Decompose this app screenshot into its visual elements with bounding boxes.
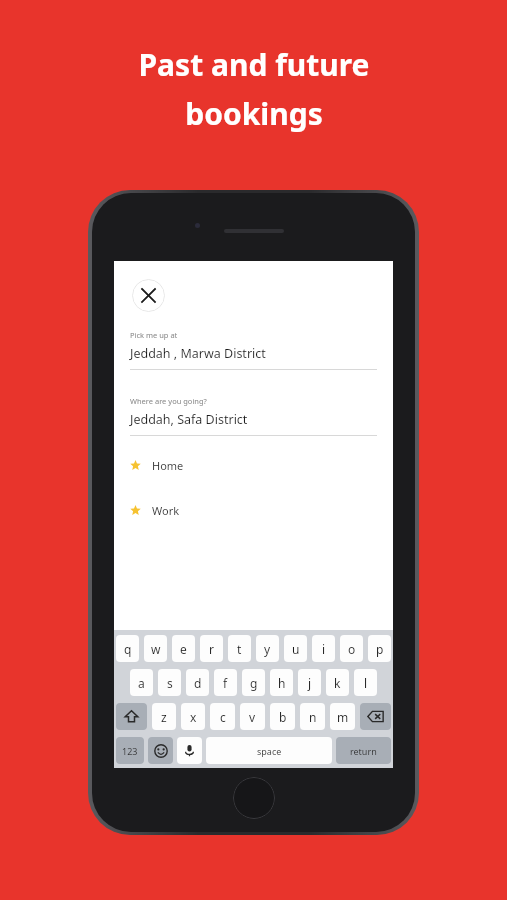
button[interactable]: y xyxy=(256,635,279,662)
button[interactable]: l xyxy=(354,669,377,696)
button[interactable]: p xyxy=(368,635,391,662)
staticText: q xyxy=(124,641,132,657)
button[interactable]: i xyxy=(312,635,335,662)
staticText: a xyxy=(138,675,145,691)
button[interactable]: r xyxy=(200,635,223,662)
staticText: space xyxy=(257,745,282,757)
button[interactable]: w xyxy=(144,635,167,662)
staticText: s xyxy=(167,675,173,691)
staticText: n xyxy=(309,709,317,725)
staticText: Jeddah, Safa District xyxy=(130,411,248,428)
other: Backspace xyxy=(367,708,384,725)
button[interactable]: Work xyxy=(130,503,377,518)
button[interactable]: q xyxy=(116,635,139,662)
button[interactable]: 123 xyxy=(116,737,144,764)
button[interactable]: t xyxy=(228,635,251,662)
staticText: e xyxy=(180,641,187,657)
staticText: Past and future xyxy=(138,44,370,85)
button[interactable]: z xyxy=(152,703,176,730)
staticText: Home xyxy=(152,458,184,473)
button[interactable]: x xyxy=(181,703,205,730)
button[interactable]: e xyxy=(172,635,195,662)
staticText: f xyxy=(223,675,228,691)
button[interactable]: Voice input xyxy=(177,737,202,764)
button[interactable]: n xyxy=(300,703,325,730)
staticText: l xyxy=(364,675,368,691)
staticText: bookings xyxy=(185,93,323,134)
staticText: t xyxy=(237,641,242,657)
button[interactable]: k xyxy=(326,669,349,696)
button[interactable]: Shift xyxy=(116,703,147,730)
staticText: Pick me up at xyxy=(130,330,178,340)
staticText: d xyxy=(194,675,202,691)
button[interactable]: space xyxy=(206,737,332,764)
staticText: p xyxy=(376,641,384,657)
staticText: x xyxy=(190,709,197,725)
staticText: Jeddah , Marwa District xyxy=(130,345,266,362)
button[interactable]: g xyxy=(242,669,265,696)
staticText: c xyxy=(220,709,226,725)
button[interactable]: Home button xyxy=(233,777,275,819)
button[interactable]: v xyxy=(240,703,265,730)
staticText: o xyxy=(348,641,356,657)
button[interactable]: o xyxy=(340,635,363,662)
staticText: Work xyxy=(152,503,180,518)
staticText: y xyxy=(264,641,271,657)
button[interactable]: u xyxy=(284,635,307,662)
staticText: g xyxy=(250,675,258,691)
button[interactable]: d xyxy=(186,669,209,696)
button[interactable]: Pick me up at xyxy=(130,330,377,370)
staticText: z xyxy=(161,709,167,725)
staticText: j xyxy=(308,675,312,691)
staticText: Where are you going? xyxy=(130,396,207,406)
staticText: r xyxy=(209,641,214,657)
staticText: return xyxy=(350,745,377,757)
button[interactable]: Where are you going? xyxy=(130,396,377,436)
staticText: h xyxy=(278,675,286,691)
staticText: k xyxy=(334,675,341,691)
button[interactable]: Emoji xyxy=(148,737,173,764)
button[interactable]: Backspace xyxy=(360,703,391,730)
staticText: w xyxy=(151,641,161,657)
staticText: m xyxy=(337,709,349,725)
button[interactable]: Home xyxy=(130,458,377,473)
button[interactable]: j xyxy=(298,669,321,696)
staticText: v xyxy=(249,709,256,725)
staticText: u xyxy=(292,641,300,657)
button[interactable]: f xyxy=(214,669,237,696)
staticText: b xyxy=(279,709,287,725)
button[interactable]: m xyxy=(330,703,355,730)
staticText: 123 xyxy=(122,745,138,757)
button[interactable]: return xyxy=(336,737,391,764)
button[interactable]: a xyxy=(130,669,153,696)
staticText: i xyxy=(322,641,326,657)
button[interactable]: b xyxy=(270,703,295,730)
other: Shift xyxy=(124,709,139,724)
button[interactable]: h xyxy=(270,669,293,696)
button[interactable]: c xyxy=(210,703,235,730)
button[interactable]: s xyxy=(158,669,181,696)
button[interactable]: Close xyxy=(132,279,165,312)
